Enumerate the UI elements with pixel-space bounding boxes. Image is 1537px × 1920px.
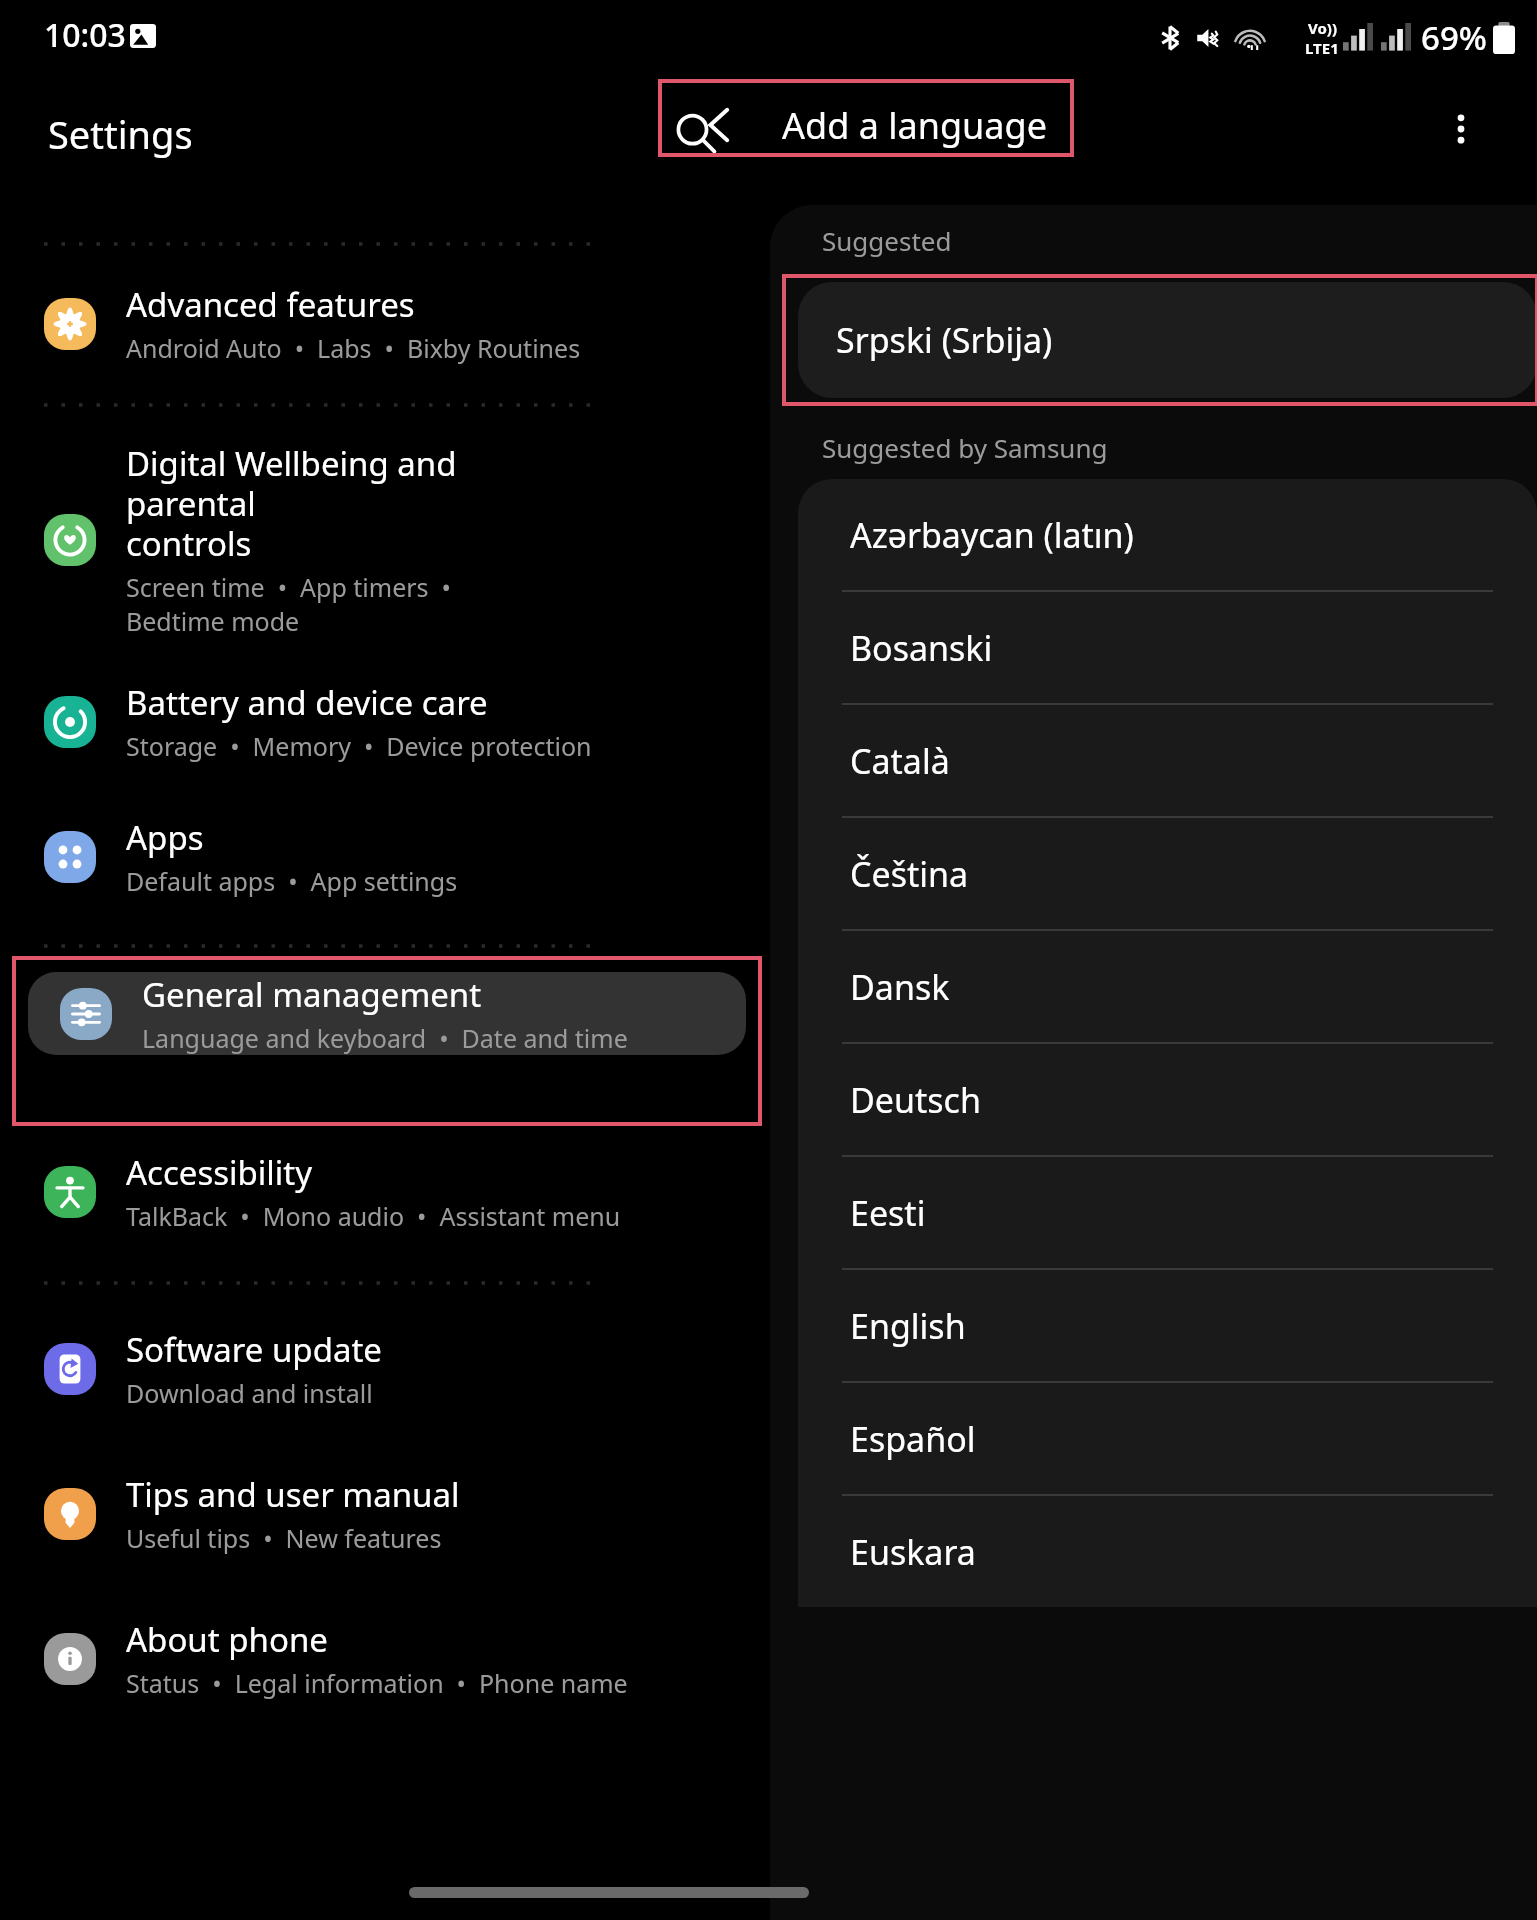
staticText: Download and install xyxy=(126,1376,373,1410)
button[interactable]: More options xyxy=(1429,97,1493,161)
staticText: Español xyxy=(850,1416,976,1462)
button[interactable]: Eesti xyxy=(798,1157,1537,1268)
button[interactable]: Apps xyxy=(0,797,770,916)
staticText: Battery and device care xyxy=(126,680,488,725)
staticText: Status • Legal information • Phone name xyxy=(126,1666,628,1700)
button[interactable]: Čeština xyxy=(798,818,1537,929)
staticText: Android Auto • Labs • Bixby Routines xyxy=(126,331,581,365)
button[interactable]: Bosanski xyxy=(798,592,1537,703)
button[interactable]: Dansk xyxy=(798,931,1537,1042)
staticText: Tips and user manual xyxy=(126,1472,460,1517)
button[interactable]: Azərbaycan (latın) xyxy=(798,479,1537,590)
staticText: General management xyxy=(142,972,482,1017)
button[interactable]: Deutsch xyxy=(798,1044,1537,1155)
button[interactable]: Srpski (Srbija) xyxy=(798,282,1537,398)
staticText: Srpski (Srbija) xyxy=(836,317,1053,363)
button[interactable]: Català xyxy=(798,705,1537,816)
button[interactable]: Software update xyxy=(0,1309,770,1428)
button[interactable]: Español xyxy=(798,1383,1537,1494)
button[interactable]: Euskara xyxy=(798,1496,1537,1607)
staticText: Screen time • App timers • Bedtime mode xyxy=(126,570,520,638)
staticText: 10:03 xyxy=(44,13,126,57)
staticText: LTE1 xyxy=(1305,38,1339,58)
staticText: Storage • Memory • Device protection xyxy=(126,729,592,763)
button[interactable]: General management xyxy=(28,972,746,1055)
staticText: Add a language xyxy=(782,101,1047,150)
staticText: Apps xyxy=(126,815,204,860)
staticText: Dansk xyxy=(850,964,950,1010)
button[interactable]: Tips and user manual xyxy=(0,1454,770,1573)
staticText: TalkBack • Mono audio • Assistant menu xyxy=(126,1199,621,1233)
staticText: Language and keyboard • Date and time xyxy=(142,1021,628,1055)
button[interactable]: Digital Wellbeing and parental controls xyxy=(0,431,770,648)
staticText: Useful tips • New features xyxy=(126,1521,442,1555)
staticText: Euskara xyxy=(850,1529,976,1575)
staticText: 69% xyxy=(1421,15,1487,60)
button[interactable]: Search xyxy=(664,102,728,166)
button[interactable]: Battery and device care xyxy=(0,662,770,781)
staticText: Vo)) xyxy=(1308,18,1337,38)
button[interactable]: About phone xyxy=(0,1599,770,1718)
staticText: Suggested xyxy=(822,223,952,258)
staticText: Čeština xyxy=(850,851,969,897)
staticText: Deutsch xyxy=(850,1077,981,1123)
staticText: Software update xyxy=(126,1327,382,1372)
button[interactable]: Advanced features xyxy=(0,264,770,383)
button[interactable]: Accessibility xyxy=(0,1132,770,1251)
staticText: Català xyxy=(850,738,950,784)
staticText: Digital Wellbeing and parental controls xyxy=(126,441,520,566)
staticText: Settings xyxy=(48,108,193,160)
button[interactable]: Back xyxy=(688,93,752,157)
staticText: Azərbaycan (latın) xyxy=(850,512,1134,558)
staticText: About phone xyxy=(126,1617,328,1662)
staticText: Eesti xyxy=(850,1190,926,1236)
button[interactable]: English xyxy=(798,1270,1537,1381)
staticText: English xyxy=(850,1303,966,1349)
staticText: Default apps • App settings xyxy=(126,864,458,898)
staticText: Accessibility xyxy=(126,1150,313,1195)
staticText: Bosanski xyxy=(850,625,993,671)
staticText: Suggested by Samsung xyxy=(822,430,1108,465)
staticText: Advanced features xyxy=(126,282,415,327)
